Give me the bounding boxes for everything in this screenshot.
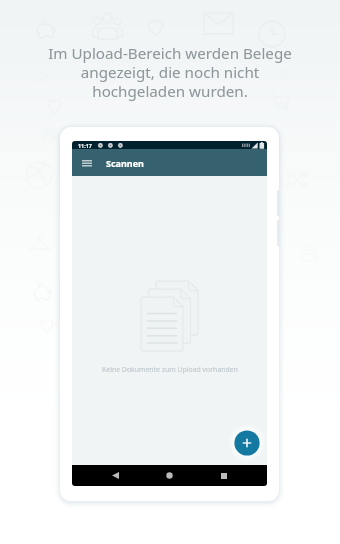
staticText: Im Upload-Bereich werden Belege angezeig… (0, 43, 340, 101)
button[interactable]: Neues Dokument hinzufügen (230, 426, 264, 460)
staticText: 11:17 (78, 142, 92, 149)
button[interactable]: Start (159, 465, 180, 486)
button[interactable]: Zurück (105, 465, 126, 486)
button[interactable]: Übersicht (213, 465, 234, 486)
staticText: Scannen (106, 157, 144, 169)
staticText: Keine Dokumente zum Upload vorhanden (102, 365, 238, 374)
button[interactable]: Menü (79, 155, 94, 170)
